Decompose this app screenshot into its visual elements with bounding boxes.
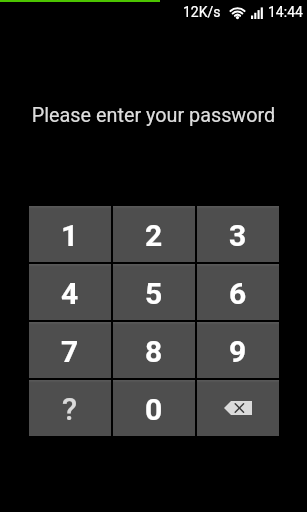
staticText: 12K/s xyxy=(183,4,221,20)
other: Signal strength xyxy=(251,8,263,19)
other: Wi-Fi xyxy=(229,7,246,19)
button[interactable]: ? xyxy=(29,380,111,436)
staticText: 9 xyxy=(229,334,247,369)
staticText: 2 xyxy=(145,218,163,253)
button[interactable]: 5 xyxy=(113,264,195,320)
button[interactable]: 4 xyxy=(29,264,111,320)
staticText: 14:44 xyxy=(268,4,303,20)
staticText: 3 xyxy=(229,218,247,253)
staticText: 1 xyxy=(61,218,79,253)
staticText: 4 xyxy=(61,276,79,311)
button[interactable]: 2 xyxy=(113,206,195,262)
staticText: Please enter your password xyxy=(0,104,307,127)
button[interactable]: 1 xyxy=(29,206,111,262)
button[interactable]: 6 xyxy=(197,264,279,320)
button[interactable]: Delete xyxy=(197,380,279,436)
staticText: 5 xyxy=(145,276,163,311)
staticText: ? xyxy=(62,391,78,427)
button[interactable]: 9 xyxy=(197,322,279,378)
button[interactable]: 0 xyxy=(113,380,195,436)
staticText: 6 xyxy=(229,276,247,311)
button[interactable]: 8 xyxy=(113,322,195,378)
staticText: 7 xyxy=(61,334,79,369)
staticText: 0 xyxy=(145,392,163,427)
staticText: 8 xyxy=(145,334,163,369)
button[interactable]: 3 xyxy=(197,206,279,262)
button[interactable]: 7 xyxy=(29,322,111,378)
